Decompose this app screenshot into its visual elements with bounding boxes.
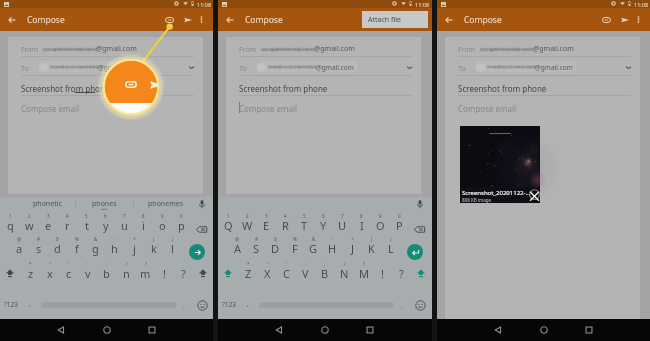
button[interactable]: # (29, 235, 48, 259)
button[interactable]: Remove attachment (527, 188, 542, 203)
button[interactable]: Recent apps (582, 323, 596, 337)
button[interactable]: 0 (390, 212, 409, 236)
button[interactable]: Navigate up (224, 14, 236, 26)
button[interactable]: Emoji (197, 300, 208, 311)
button[interactable]: Voice input (415, 199, 425, 209)
button[interactable]: Recent apps (145, 323, 159, 337)
button[interactable]: Home (318, 323, 332, 337)
button[interactable]: $ (48, 235, 67, 259)
button[interactable]: 1 (219, 212, 238, 236)
button[interactable]: / (117, 260, 136, 284)
button[interactable]: ? (392, 260, 411, 284)
button[interactable]: Emoji (415, 300, 426, 311)
button[interactable]: ; (315, 260, 334, 284)
button[interactable]: & (304, 235, 323, 259)
button[interactable]: - (105, 235, 124, 259)
button[interactable]: Attach file (163, 13, 175, 26)
button[interactable]: 8 (352, 212, 371, 236)
button[interactable]: Shift (4, 267, 16, 279)
button[interactable]: Shift (415, 267, 427, 279)
button[interactable]: Recent apps (363, 323, 377, 337)
button[interactable]: Expand recipients (623, 62, 634, 73)
button[interactable]: Home (537, 323, 551, 337)
button[interactable]: 5 (295, 212, 314, 236)
button[interactable]: Navigate up (6, 14, 18, 26)
button[interactable]: : (296, 260, 315, 284)
button[interactable]: 7 (115, 212, 134, 236)
button[interactable]: Expand recipients (404, 62, 415, 73)
button[interactable]: Home (100, 323, 114, 337)
button[interactable]: ' (277, 260, 296, 284)
button[interactable]: Back (54, 323, 68, 337)
button[interactable]: 7 (333, 212, 352, 236)
button[interactable]: ? (174, 260, 193, 284)
button[interactable]: 5 (77, 212, 96, 236)
button[interactable]: : (78, 260, 97, 284)
button[interactable]: Attach file (362, 11, 428, 28)
button[interactable]: ( (362, 235, 381, 259)
button[interactable]: Shift (197, 267, 209, 279)
button[interactable]: / (335, 260, 354, 284)
button[interactable]: Comma (241, 296, 255, 312)
button[interactable]: ! (373, 260, 392, 284)
button[interactable]: Expand recipients (186, 62, 197, 73)
button[interactable]: " (40, 260, 59, 284)
button[interactable]: ?123 (218, 296, 239, 312)
button[interactable]: & (86, 235, 105, 259)
button[interactable]: Send (181, 13, 194, 26)
button[interactable]: phonemes (137, 197, 193, 211)
button[interactable]: ' (59, 260, 78, 284)
button[interactable]: ) (381, 235, 400, 259)
button[interactable]: 4 (58, 212, 77, 236)
button[interactable]: 8 (134, 212, 153, 236)
button[interactable]: 9 (371, 212, 390, 236)
button[interactable]: 6 (96, 212, 115, 236)
button[interactable]: 3 (257, 212, 276, 236)
button[interactable]: 2 (238, 212, 257, 236)
button[interactable]: More options (633, 14, 644, 25)
button[interactable]: ( (144, 235, 163, 259)
button[interactable]: 0 (172, 212, 191, 236)
button[interactable]: 3 (39, 212, 58, 236)
button[interactable]: # (247, 235, 266, 259)
button[interactable]: $ (266, 235, 285, 259)
button[interactable]: ) (163, 235, 182, 259)
button[interactable]: Attach file (600, 13, 612, 26)
button[interactable]: * (21, 260, 40, 284)
button[interactable]: phonetic (19, 197, 75, 211)
button[interactable]: More options (196, 14, 207, 25)
button[interactable]: " (258, 260, 277, 284)
button[interactable]: ? (354, 260, 373, 284)
button[interactable]: 1 (1, 212, 20, 236)
button[interactable]: ! (155, 260, 174, 284)
button[interactable]: Backspace (413, 223, 426, 236)
button[interactable]: + (343, 235, 362, 259)
button[interactable]: Backspace (195, 223, 208, 236)
button[interactable]: @ (10, 235, 29, 259)
button[interactable]: ; (97, 260, 116, 284)
button[interactable]: ? (136, 260, 155, 284)
button[interactable]: 6 (314, 212, 333, 236)
button[interactable]: Back (491, 323, 505, 337)
button[interactable]: Shift (222, 267, 234, 279)
button[interactable]: @ (228, 235, 247, 259)
button[interactable]: Enter (407, 244, 423, 260)
button[interactable]: Voice input (197, 199, 207, 209)
button[interactable]: + (125, 235, 144, 259)
button[interactable]: * (239, 260, 258, 284)
button[interactable]: ?123 (0, 296, 21, 312)
button[interactable]: 9 (153, 212, 172, 236)
button[interactable]: phones (76, 197, 132, 211)
button[interactable]: % (67, 235, 86, 259)
button[interactable]: Enter (189, 244, 205, 260)
button[interactable]: % (285, 235, 304, 259)
button[interactable]: - (323, 235, 342, 259)
button[interactable]: Back (272, 323, 286, 337)
button[interactable]: Send (399, 13, 412, 26)
button[interactable]: Comma (23, 296, 37, 312)
